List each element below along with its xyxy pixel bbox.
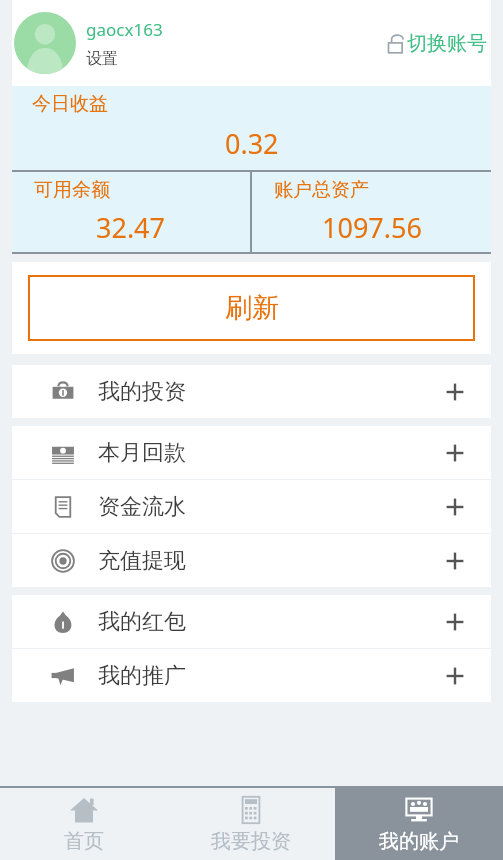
button[interactable]: 充值提现 (12, 534, 491, 587)
staticText: gaocx163 (86, 18, 163, 41)
button[interactable]: 切换账号 (385, 31, 487, 56)
button[interactable]: 我的红包 (12, 595, 491, 648)
staticText: 我要投资 (211, 829, 291, 854)
button[interactable]: 首页 (0, 788, 167, 860)
staticText: 我的红包 (98, 608, 186, 636)
staticText: 设置 (86, 49, 118, 69)
staticText: 切换账号 (407, 31, 487, 56)
button[interactable]: 我的账户 (335, 788, 503, 860)
staticText: 充值提现 (98, 547, 186, 575)
button[interactable]: gaocx163 (86, 18, 163, 69)
staticText: 本月回款 (98, 439, 186, 467)
staticText: 刷新 (225, 291, 279, 325)
staticText: 资金流水 (98, 493, 186, 521)
button[interactable]: 我的投资 (12, 365, 491, 418)
staticText: 我的投资 (98, 378, 186, 406)
staticText: 1097.56 (322, 209, 422, 246)
staticText: 今日收益 (32, 92, 108, 116)
staticText: 我的推广 (98, 662, 186, 690)
staticText: 账户总资产 (274, 178, 369, 202)
button[interactable]: 我的推广 (12, 649, 491, 702)
button[interactable]: 刷新 (28, 275, 475, 341)
staticText: 0.32 (225, 125, 279, 162)
staticText: 32.47 (96, 209, 166, 246)
button[interactable]: 本月回款 (12, 426, 491, 479)
button[interactable]: Profile avatar (14, 12, 76, 74)
button[interactable]: 资金流水 (12, 480, 491, 533)
staticText: 可用余额 (34, 178, 110, 202)
staticText: 首页 (64, 829, 104, 854)
staticText: 我的账户 (379, 829, 459, 854)
button[interactable]: 我要投资 (167, 788, 335, 860)
